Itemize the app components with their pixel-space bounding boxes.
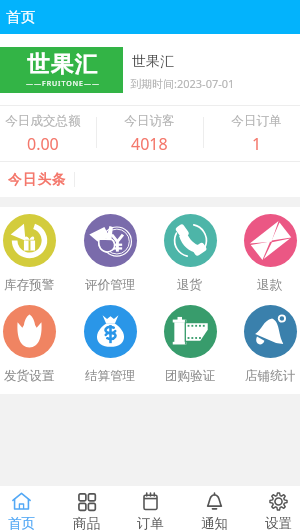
- button[interactable]: 今日头条: [0, 162, 300, 197]
- button[interactable]: 店铺统计: [230, 305, 300, 384]
- button[interactable]: 今日成交总额: [0, 106, 96, 161]
- staticText: 商品: [73, 515, 100, 530]
- staticText: 今日头条: [8, 171, 67, 188]
- button[interactable]: 团购验证: [150, 305, 230, 384]
- staticText: 到期时间:2023-07-01: [130, 76, 235, 91]
- staticText: 评价管理: [85, 277, 136, 293]
- button[interactable]: Products: [54, 486, 118, 530]
- button[interactable]: 退款: [230, 214, 300, 293]
- staticText: 4018: [131, 133, 168, 155]
- staticText: 首页: [6, 8, 35, 26]
- staticText: ——FRUITONE——: [26, 79, 100, 89]
- button[interactable]: 库存预警: [0, 214, 70, 293]
- button[interactable]: 世果汇: [132, 53, 174, 71]
- staticText: 结算管理: [85, 368, 136, 384]
- staticText: 设置: [265, 515, 292, 530]
- button[interactable]: 发货设置: [0, 305, 70, 384]
- staticText: 退货: [177, 277, 203, 293]
- staticText: 团购验证: [165, 368, 216, 384]
- button[interactable]: 评价管理: [70, 214, 150, 293]
- button[interactable]: Orders: [118, 486, 182, 530]
- button[interactable]: 今日访客: [96, 106, 203, 161]
- staticText: 退款: [257, 277, 283, 293]
- staticText: 今日访客: [124, 113, 175, 129]
- staticText: 通知: [201, 515, 228, 530]
- staticText: 库存预警: [4, 277, 55, 293]
- staticText: 发货设置: [4, 368, 55, 384]
- staticText: 1: [252, 133, 262, 155]
- button[interactable]: Notifications: [182, 486, 246, 530]
- button[interactable]: Home: [0, 486, 54, 530]
- button[interactable]: Settings: [246, 486, 300, 530]
- button[interactable]: 退货: [150, 214, 230, 293]
- button[interactable]: 结算管理: [70, 305, 150, 384]
- staticText: 订单: [137, 515, 164, 530]
- staticText: 世果汇: [27, 50, 99, 78]
- button[interactable]: 世果汇: [0, 47, 123, 93]
- staticText: 店铺统计: [245, 368, 296, 384]
- staticText: 0.00: [27, 133, 59, 155]
- staticText: 今日订单: [231, 113, 282, 129]
- staticText: 今日成交总额: [5, 113, 81, 129]
- button[interactable]: 今日订单: [203, 106, 300, 161]
- staticText: 首页: [8, 515, 35, 530]
